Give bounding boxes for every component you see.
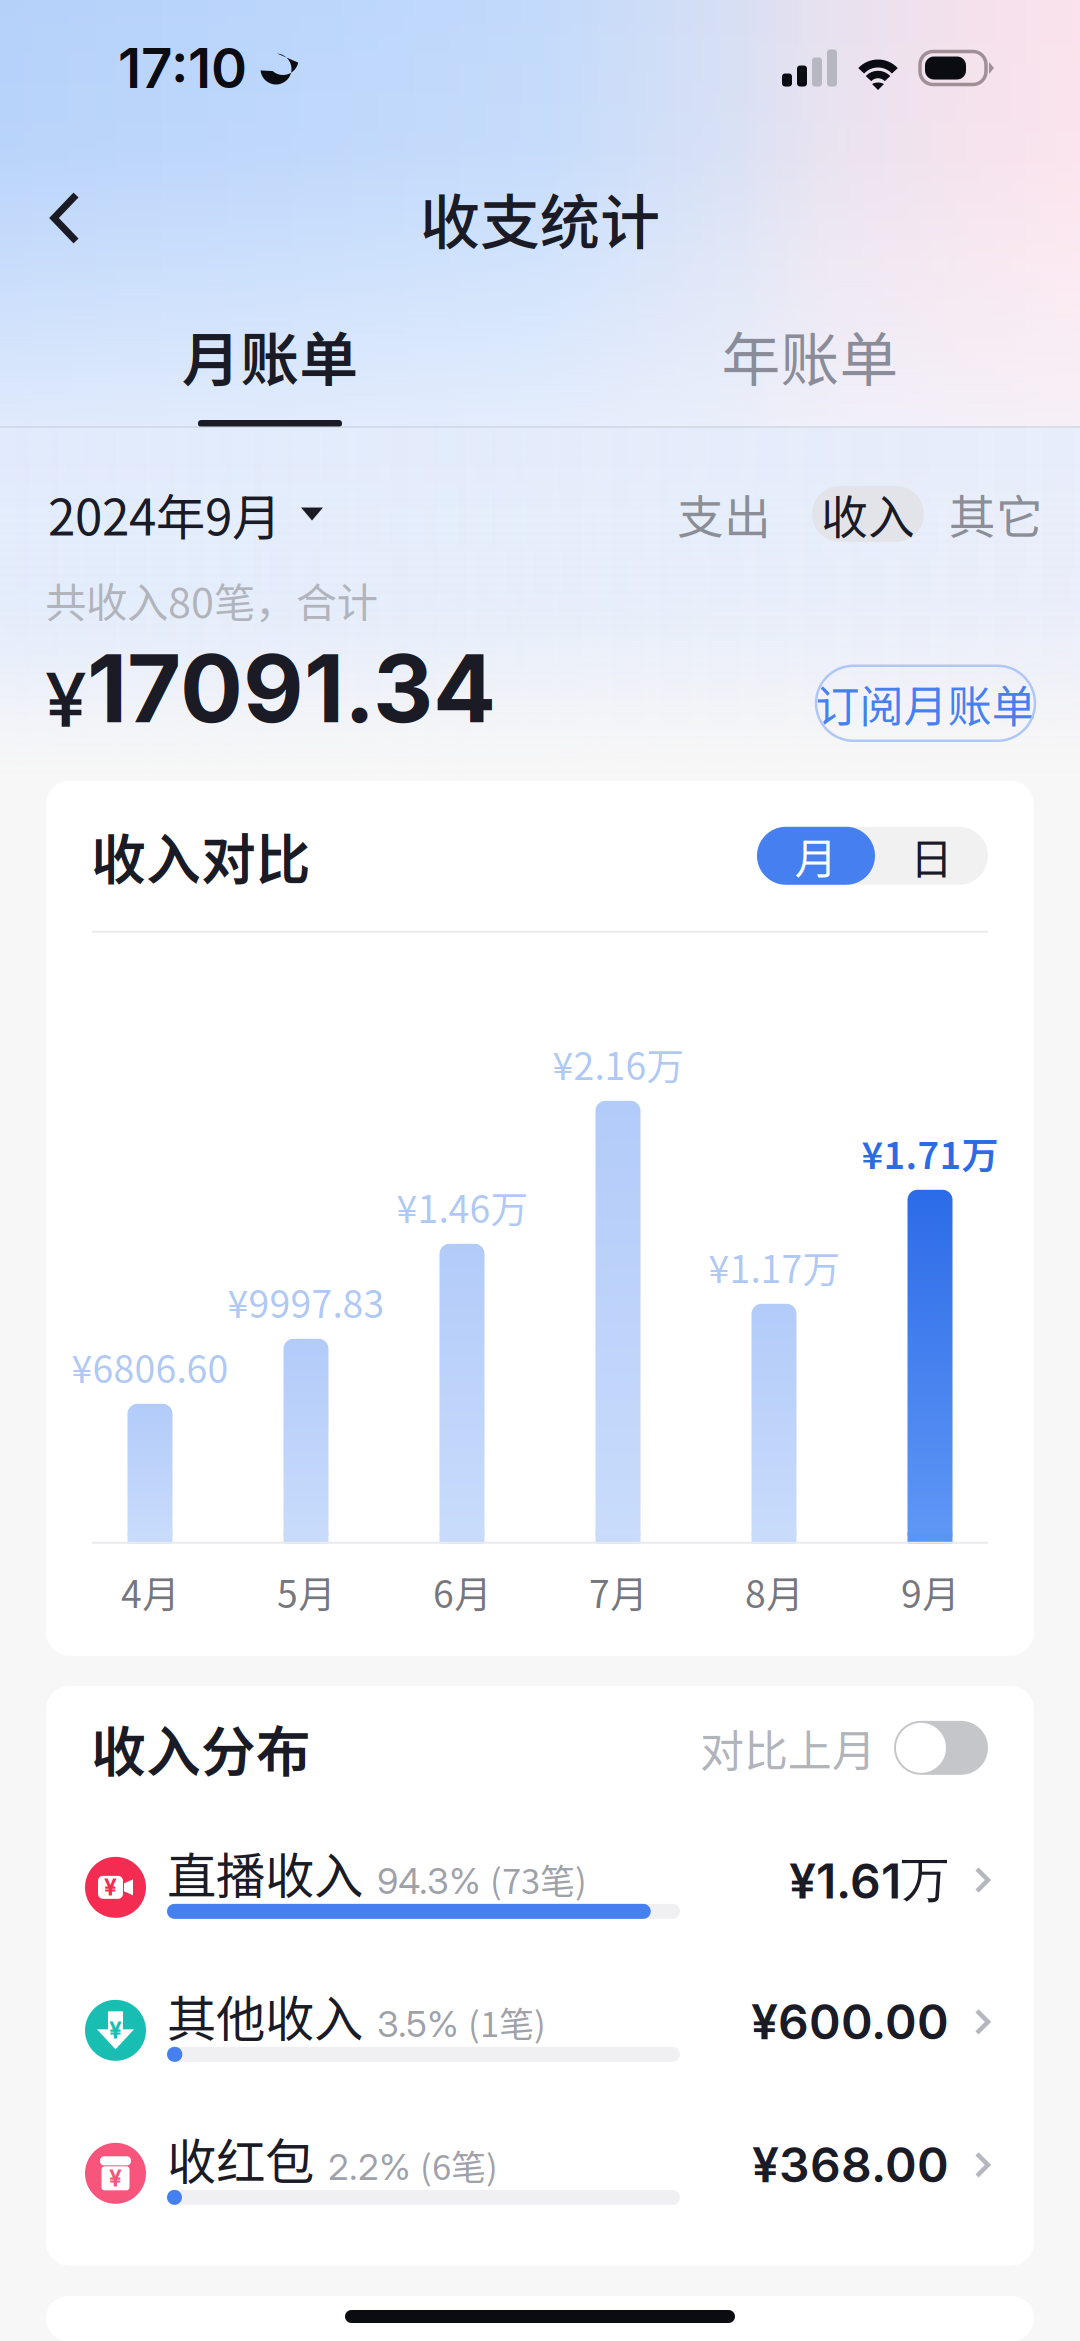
button[interactable]: 订阅月账单 xyxy=(816,666,1035,741)
staticText: 7月 xyxy=(589,1565,647,1619)
button[interactable]: 2024年9月 xyxy=(48,486,323,542)
staticText: 对比上月 xyxy=(700,1716,876,1780)
button[interactable]: 月 xyxy=(757,827,875,885)
staticText: ¥368.00 xyxy=(752,2136,949,2194)
staticText: ¥6806.60 xyxy=(71,1340,228,1394)
staticText: 收支统计 xyxy=(420,175,660,261)
button[interactable]: 年账单 xyxy=(540,300,1080,428)
button[interactable]: 支出 xyxy=(672,486,776,542)
staticText: ¥ xyxy=(109,2017,122,2044)
staticText: 5月 xyxy=(277,1565,335,1619)
staticText: 直播收入 xyxy=(167,1837,363,1908)
staticText: 其它 xyxy=(949,480,1043,548)
button[interactable]: 月账单 xyxy=(0,300,540,428)
button[interactable]: 收入 xyxy=(812,486,924,542)
staticText: 2.2% xyxy=(328,2145,411,2189)
staticText: ¥ xyxy=(109,2165,122,2192)
staticText: 4月 xyxy=(121,1565,179,1619)
staticText: ¥1.61万 xyxy=(789,1850,949,1910)
staticText: 17:10 xyxy=(118,35,247,101)
staticText: ¥1.46万 xyxy=(396,1180,527,1234)
staticText: 收入 xyxy=(821,480,915,548)
staticText: 2024年9月 xyxy=(48,478,281,550)
staticText: 94.3% xyxy=(377,1859,481,1903)
staticText: 年账单 xyxy=(721,313,898,398)
staticText: 订阅月账单 xyxy=(815,671,1035,735)
staticText: 收入对比 xyxy=(91,816,311,895)
staticText: 8月 xyxy=(745,1565,803,1619)
staticText: ¥ xyxy=(104,1874,117,1901)
staticText: 17091.34 xyxy=(87,632,496,745)
staticText: 3.5% xyxy=(377,2002,459,2046)
staticText: ¥ xyxy=(45,654,87,745)
staticText: 9月 xyxy=(901,1565,959,1619)
staticText: ¥1.17万 xyxy=(708,1240,839,1294)
staticText: ¥600.00 xyxy=(751,1993,949,2051)
staticText: 支出 xyxy=(677,480,771,548)
button[interactable]: 日 xyxy=(875,827,988,885)
button[interactable]: 其它 xyxy=(958,486,1034,542)
button[interactable]: Compare with last month xyxy=(894,1721,988,1775)
staticText: 共收入80笔，合计 xyxy=(45,570,378,630)
staticText: 月账单 xyxy=(181,313,358,398)
staticText: 收红包 xyxy=(167,2123,314,2194)
staticText: 收入分布 xyxy=(91,1708,311,1787)
staticText: ¥1.71万 xyxy=(861,1126,998,1180)
button[interactable]: Back xyxy=(0,170,130,266)
staticText: 6月 xyxy=(433,1565,491,1619)
staticText: 其他收入 xyxy=(167,1980,363,2051)
button[interactable]: ¥ xyxy=(46,2096,1034,2239)
staticText: ¥9997.83 xyxy=(227,1275,384,1329)
staticText: (73笔) xyxy=(490,1854,587,1904)
staticText: 月 xyxy=(794,825,837,887)
staticText: (1笔) xyxy=(468,1997,546,2047)
button[interactable]: ¥ xyxy=(46,1810,1034,1953)
staticText: 日 xyxy=(910,825,953,887)
staticText: (6笔) xyxy=(420,2140,498,2190)
button[interactable]: ¥ xyxy=(46,1953,1034,2096)
staticText: ¥2.16万 xyxy=(552,1037,683,1091)
